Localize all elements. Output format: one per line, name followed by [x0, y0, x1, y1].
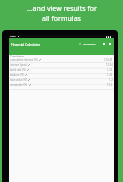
staticText: interest (year) — [10, 63, 27, 67]
staticText: ADD FORMULA — [83, 43, 96, 45]
staticText: …and view results for — [27, 4, 97, 14]
other: Add formula — [79, 43, 81, 45]
staticText: 1.23 — [107, 73, 113, 77]
staticText: cumulative interest (%) — [10, 58, 38, 62]
staticText: remainder (%) — [10, 83, 28, 87]
button[interactable]: interest (year) — [9, 62, 114, 67]
staticText: 123.45 — [104, 58, 113, 62]
button[interactable]: cumulative interest (%) — [9, 57, 114, 62]
staticText: all formulas — [42, 14, 81, 24]
staticText: 1.2 — [109, 78, 113, 82]
staticText: Cumulative — [10, 55, 24, 57]
staticText: loan value (%) — [10, 78, 27, 82]
button[interactable]: Financial Calculator — [11, 43, 41, 47]
staticText: 12.34 — [106, 63, 113, 67]
button[interactable]: loan value (%) — [9, 77, 114, 82]
staticText: balance (%) — [10, 73, 24, 77]
staticText: 1.23 — [107, 68, 113, 72]
staticText: 12.3 — [107, 83, 113, 87]
staticText: bank rate (%) — [10, 68, 26, 72]
staticText: 10:07 — [10, 35, 16, 38]
button[interactable]: Add formula — [79, 43, 96, 45]
button[interactable]: balance (%) — [9, 72, 114, 77]
button[interactable]: remainder (%) — [9, 82, 114, 87]
button[interactable]: bank rate (%) — [9, 67, 114, 72]
